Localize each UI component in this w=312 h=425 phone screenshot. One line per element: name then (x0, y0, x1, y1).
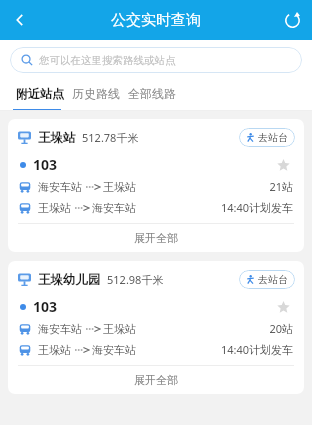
staticText: 512.78千米 (82, 130, 139, 145)
staticText: 历史路线 (72, 86, 120, 101)
button[interactable]: 王垛幼儿园 (8, 261, 304, 394)
button[interactable]: 展开全部 (8, 224, 304, 252)
button[interactable]: Refresh (272, 0, 312, 40)
button[interactable]: 历史路线 (68, 80, 124, 111)
staticText: 王垛站 (38, 343, 71, 357)
button[interactable]: 您可以在这里搜索路线或站点 (10, 47, 302, 73)
staticText: 展开全部 (134, 231, 178, 245)
staticText: 王垛幼儿园 (38, 272, 101, 288)
staticText: 103 (33, 297, 58, 316)
staticText: 海安车站 (92, 343, 136, 357)
button[interactable]: Back (0, 0, 40, 40)
staticText: 14:40计划发车 (220, 342, 293, 357)
staticText: 512.98千米 (107, 272, 164, 287)
staticText: 14:40计划发车 (220, 200, 293, 215)
staticText: 王垛站 (38, 201, 71, 215)
staticText: 20站 (269, 321, 293, 336)
staticText: 全部线路 (128, 86, 176, 101)
staticText: 王垛站 (38, 130, 76, 146)
button[interactable]: 附近站点 (12, 80, 68, 111)
staticText: 公交实时查询 (111, 11, 201, 30)
staticText: 海安车站 (38, 322, 82, 336)
staticText: 展开全部 (134, 373, 178, 387)
staticText: 王垛站 (103, 322, 136, 336)
button[interactable]: Favorite (274, 298, 292, 316)
staticText: 103 (33, 155, 58, 174)
button[interactable]: 展开全部 (8, 366, 304, 394)
staticText: 附近站点 (16, 86, 64, 101)
staticText: 21站 (269, 179, 293, 194)
staticText: 去站台 (258, 131, 288, 144)
staticText: 去站台 (258, 273, 288, 286)
button[interactable]: 王垛站 (8, 119, 304, 252)
button[interactable]: 去站台 (239, 270, 295, 289)
staticText: 您可以在这里搜索路线或站点 (39, 54, 176, 67)
staticText: 王垛站 (103, 180, 136, 194)
button[interactable]: 全部线路 (124, 80, 180, 111)
button[interactable]: Favorite (274, 156, 292, 174)
button[interactable]: 去站台 (239, 128, 295, 147)
staticText: 海安车站 (92, 201, 136, 215)
staticText: 海安车站 (38, 180, 82, 194)
